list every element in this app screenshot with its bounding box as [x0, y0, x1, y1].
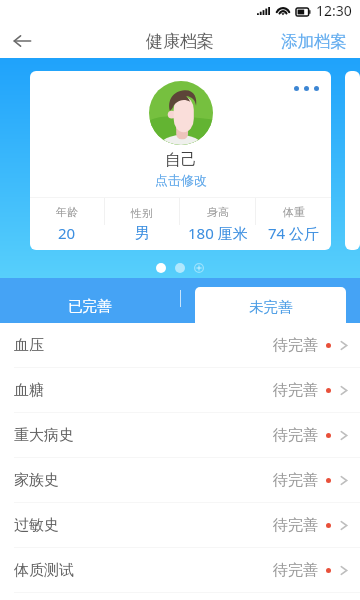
staticText: 健康档案 [146, 31, 214, 52]
staticText: 待完善 [273, 471, 318, 490]
staticText: 待完善 [273, 336, 318, 355]
staticText: 身高 [207, 205, 229, 219]
button[interactable]: 已完善 [0, 278, 180, 323]
staticText: 家族史 [14, 471, 59, 490]
staticText: 年龄 [56, 205, 78, 219]
staticText: 体质测试 [14, 561, 74, 580]
staticText: 待完善 [273, 381, 318, 400]
staticText: 自己 [165, 150, 197, 170]
button[interactable]: 血糖 [0, 368, 360, 412]
button[interactable]: 重大病史 [0, 413, 360, 457]
button[interactable]: Back [0, 24, 44, 58]
button[interactable]: More options [294, 86, 319, 91]
staticText: 待完善 [273, 561, 318, 580]
staticText: 男 [135, 224, 150, 243]
button[interactable]: 未完善 [195, 287, 346, 323]
button[interactable]: 家族史 [0, 458, 360, 502]
staticText: 血糖 [14, 381, 44, 400]
staticText: 待完善 [273, 516, 318, 535]
staticText: 血压 [14, 336, 44, 355]
staticText: 性别 [131, 206, 153, 220]
button[interactable]: 体质测试 [0, 548, 360, 592]
staticText: 已完善 [68, 297, 112, 315]
button[interactable]: 点击修改 [155, 172, 207, 188]
staticText: 12:30 [316, 1, 352, 20]
staticText: 添加档案 [281, 31, 347, 52]
staticText: 未完善 [249, 298, 293, 316]
staticText: 重大病史 [14, 426, 74, 445]
button[interactable]: 过敏史 [0, 503, 360, 547]
staticText: 20 [58, 223, 76, 243]
staticText: 过敏史 [14, 516, 59, 535]
button[interactable]: 血压 [0, 323, 360, 367]
button[interactable]: 添加档案 [269, 24, 360, 58]
staticText: 待完善 [273, 426, 318, 445]
staticText: 180 厘米 [188, 223, 248, 243]
staticText: 体重 [283, 205, 305, 219]
button[interactable]: More options [30, 71, 331, 250]
staticText: 74 公斤 [268, 223, 320, 243]
